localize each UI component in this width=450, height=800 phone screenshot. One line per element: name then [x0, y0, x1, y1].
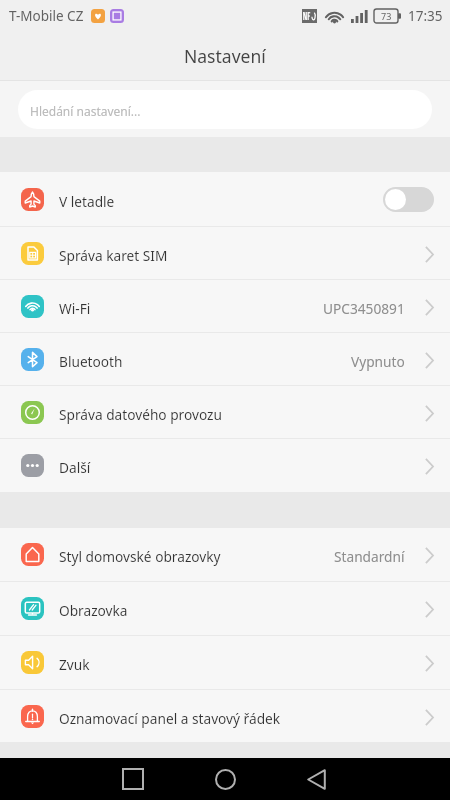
- staticText: Standardní: [334, 547, 405, 566]
- staticText: Vypnuto: [351, 352, 405, 371]
- staticText: 73: [381, 10, 392, 22]
- button[interactable]: Bluetooth: [0, 333, 450, 385]
- staticText: Další: [59, 458, 91, 477]
- button[interactable]: Další: [0, 439, 450, 492]
- staticText: 17:35: [408, 7, 443, 25]
- button[interactable]: Back: [290, 758, 342, 800]
- staticText: Správa datového provozu: [59, 405, 222, 424]
- button[interactable]: Oznamovací panel a stavový řádek: [0, 690, 450, 742]
- button[interactable]: Airplane mode toggle: [383, 187, 434, 212]
- staticText: Obrazovka: [59, 601, 128, 620]
- staticText: Bluetooth: [59, 352, 123, 371]
- staticText: Zvuk: [59, 655, 90, 674]
- staticText: T-Mobile CZ: [9, 7, 84, 25]
- staticText: Oznamovací panel a stavový řádek: [59, 709, 281, 728]
- button[interactable]: Styl domovské obrazovky: [0, 528, 450, 581]
- button[interactable]: Home: [199, 758, 251, 800]
- button[interactable]: Recent apps: [107, 758, 159, 800]
- staticText: Správa karet SIM: [59, 246, 168, 265]
- button[interactable]: Zvuk: [0, 636, 450, 689]
- button[interactable]: Wi-Fi: [0, 280, 450, 332]
- button[interactable]: Správa datového provozu: [0, 386, 450, 438]
- button[interactable]: Search settings: [18, 90, 432, 129]
- staticText: V letadle: [59, 192, 115, 211]
- staticText: Hledání nastavení...: [30, 103, 141, 119]
- button[interactable]: Obrazovka: [0, 582, 450, 635]
- staticText: Styl domovské obrazovky: [59, 547, 221, 566]
- staticText: Wi-Fi: [59, 299, 91, 318]
- staticText: UPC3450891: [323, 299, 405, 318]
- button[interactable]: V letadle: [0, 172, 450, 226]
- button[interactable]: Správa karet SIM: [0, 227, 450, 279]
- staticText: Nastavení: [184, 44, 266, 68]
